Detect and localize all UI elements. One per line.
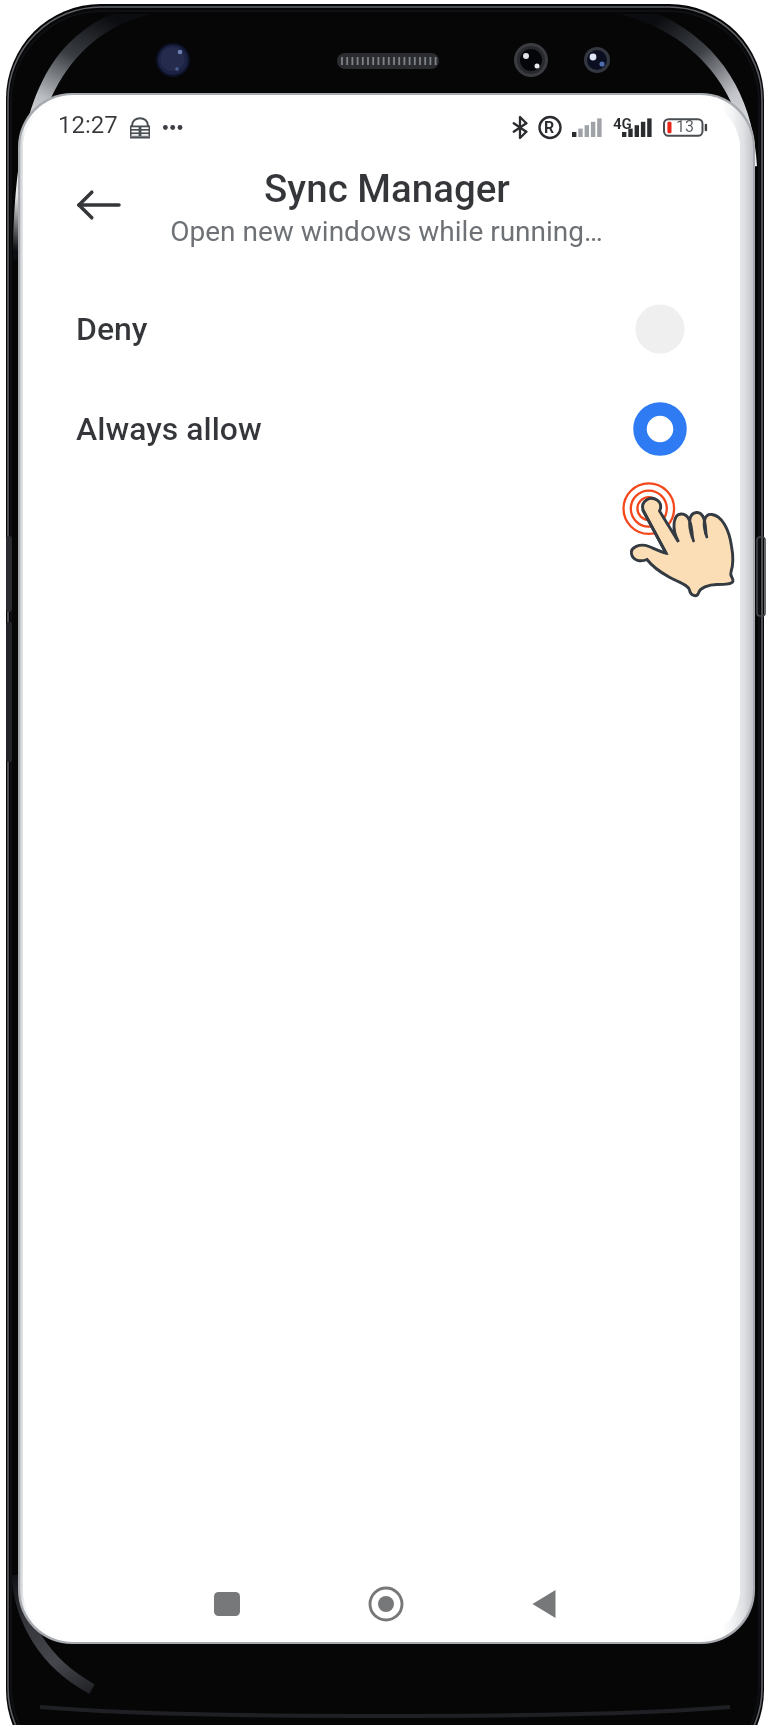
button[interactable]: Always allow xyxy=(23,379,740,479)
staticText: Open new windows while running… xyxy=(170,215,603,248)
button[interactable]: Home xyxy=(353,1571,419,1637)
staticText: 12:27 xyxy=(58,111,118,139)
button[interactable]: Back xyxy=(511,1571,577,1637)
staticText: R xyxy=(544,118,555,137)
staticText: 13 xyxy=(676,117,694,136)
button[interactable]: Recent apps xyxy=(194,1571,260,1637)
staticText: Deny xyxy=(76,310,148,348)
staticText: Sync Manager xyxy=(264,166,510,211)
staticText: Always allow xyxy=(76,410,262,448)
staticText: 4G xyxy=(613,115,632,133)
button[interactable]: Back xyxy=(59,174,143,236)
button[interactable]: Deny xyxy=(23,279,740,379)
